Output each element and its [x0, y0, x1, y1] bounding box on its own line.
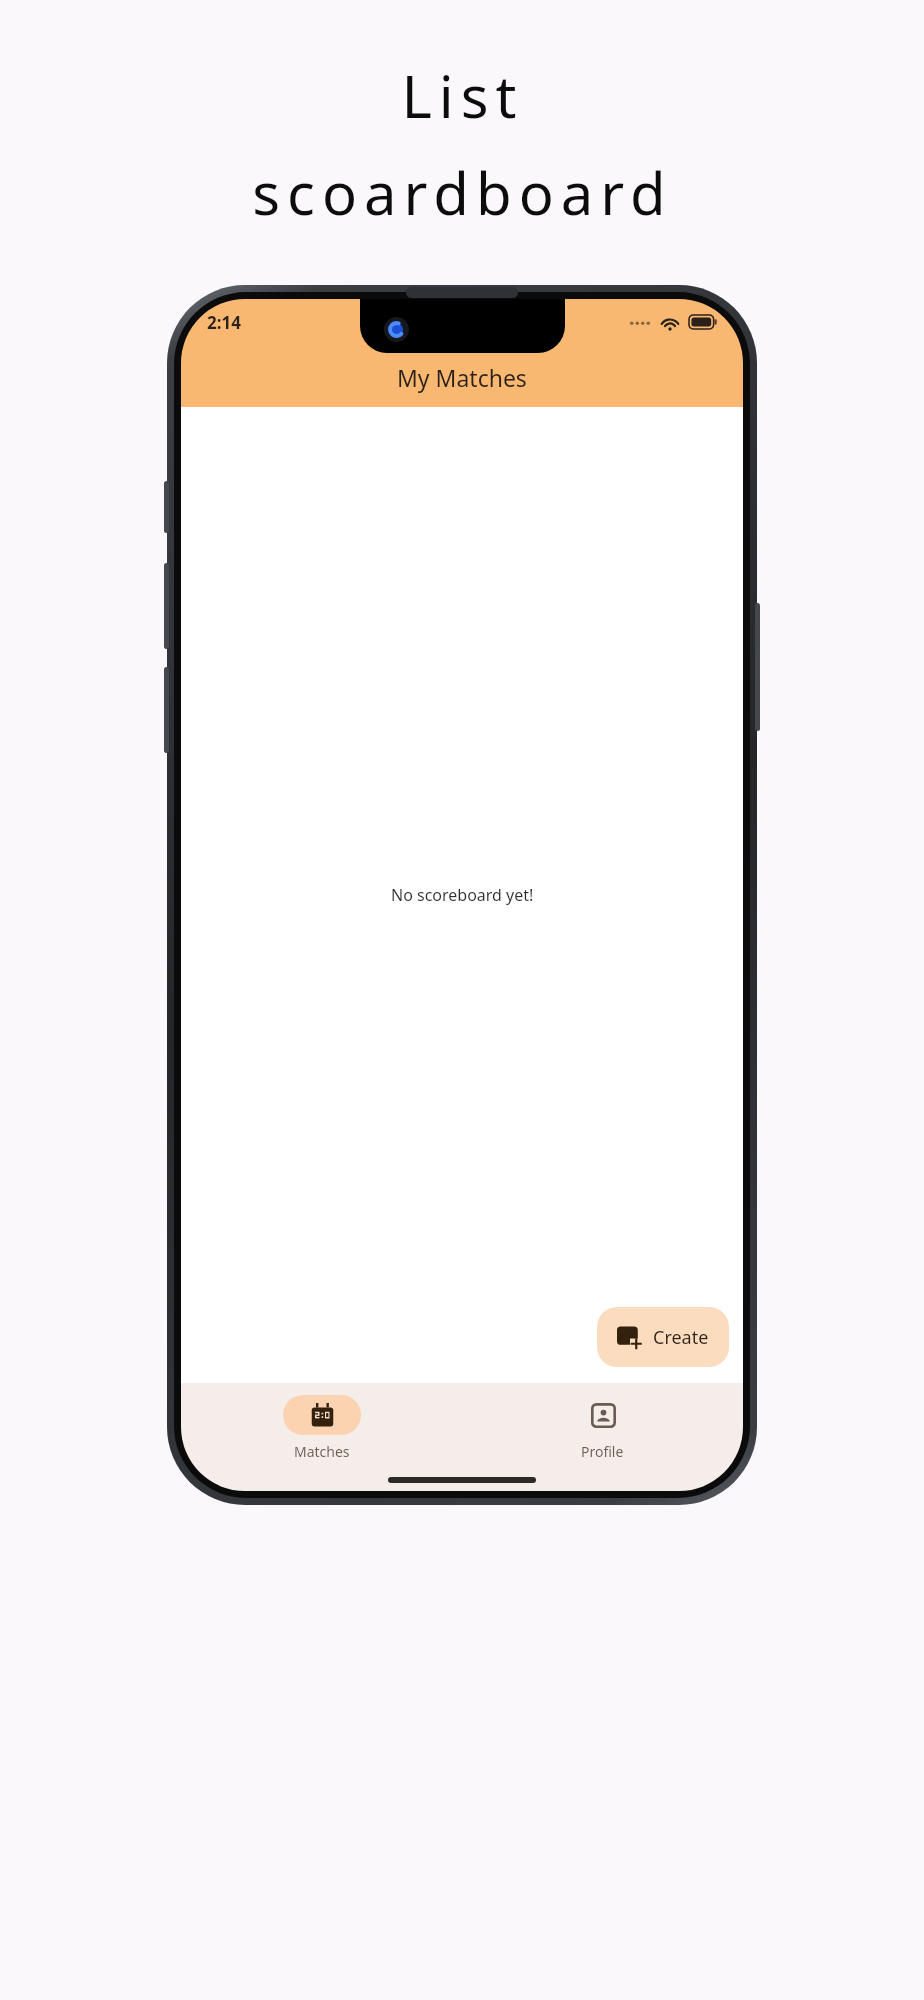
button[interactable]: Create	[597, 1307, 729, 1367]
staticText: My Matches	[397, 362, 527, 393]
staticText: scoardboard	[252, 153, 673, 232]
button[interactable]: Profile	[462, 1393, 743, 1463]
staticText: No scoreboard yet!	[391, 884, 534, 906]
other: Matches	[310, 1403, 335, 1428]
staticText: Profile	[581, 1442, 624, 1461]
staticText: List	[401, 56, 524, 135]
other: Profile	[591, 1403, 616, 1428]
button[interactable]: Matches	[181, 1393, 462, 1463]
staticText: Matches	[294, 1442, 350, 1461]
staticText: 2:14	[207, 311, 241, 334]
staticText: Create	[653, 1325, 709, 1350]
